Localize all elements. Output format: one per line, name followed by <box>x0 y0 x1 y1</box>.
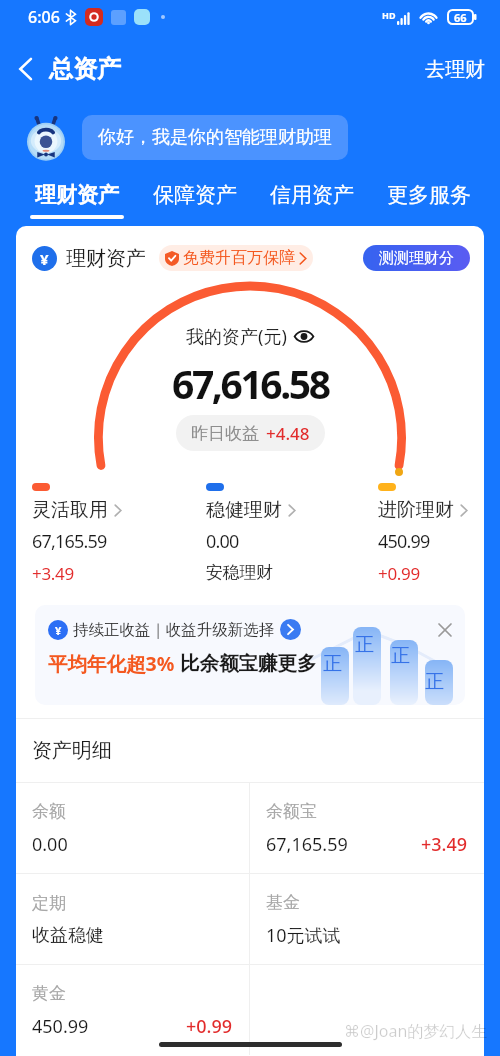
staticText: 67,165.59 <box>32 529 107 554</box>
staticText: +0.99 <box>186 1014 233 1039</box>
staticText: 正 <box>425 670 444 694</box>
button[interactable]: 昨日收益 <box>176 415 325 451</box>
staticText: 灵活取用 <box>32 498 108 522</box>
button[interactable]: Close <box>433 618 457 642</box>
staticText: 比余额宝赚更多 <box>180 651 317 676</box>
staticText: 10元试试 <box>266 923 341 948</box>
staticText: 你好，我是你的智能理财助理 <box>98 126 332 149</box>
staticText: ¥ <box>40 249 49 269</box>
button[interactable]: 更多服务 <box>370 182 487 219</box>
button[interactable]: 理财资产 <box>18 182 136 219</box>
staticText: 余额 <box>32 801 66 822</box>
staticText: 我的资产(元) <box>186 324 287 349</box>
other: Assistant <box>27 113 65 161</box>
button[interactable]: 余额 <box>16 783 249 873</box>
staticText: 理财资产 <box>66 246 146 271</box>
button[interactable]: Toggle amount visibility <box>294 329 314 344</box>
staticText: 0.00 <box>206 529 239 554</box>
staticText: ¥ <box>55 623 62 638</box>
button[interactable]: 进阶理财 <box>378 481 484 585</box>
button[interactable]: 你好，我是你的智能理财助理 <box>82 115 348 160</box>
staticText: +3.49 <box>421 832 468 857</box>
staticText: 进阶理财 <box>378 498 454 522</box>
button[interactable]: 信用资产 <box>253 182 370 219</box>
staticText: +0.99 <box>378 562 420 585</box>
staticText: 总资产 <box>49 54 121 84</box>
staticText: 更多服务 <box>387 182 471 208</box>
staticText: 稳健理财 <box>206 498 282 522</box>
staticText: 0.00 <box>32 832 68 857</box>
staticText: 450.99 <box>378 529 430 554</box>
staticText: 安稳理财 <box>206 562 273 583</box>
staticText: 昨日收益 <box>191 423 259 444</box>
staticText: 正 <box>391 644 410 668</box>
staticText: 资产明细 <box>32 738 112 763</box>
staticText: 平均年化超3% <box>48 650 175 677</box>
staticText: +3.49 <box>32 562 74 585</box>
button[interactable]: 保障资产 <box>136 182 253 219</box>
button[interactable]: 定期 <box>16 874 249 964</box>
button[interactable]: 正 <box>35 605 465 705</box>
staticText: 450.99 <box>32 1014 89 1039</box>
staticText: 66 <box>454 10 467 25</box>
button[interactable]: 灵活取用 <box>32 481 142 585</box>
staticText: 67,165.59 <box>266 832 348 857</box>
staticText: 持续正收益｜收益升级新选择 <box>73 620 275 640</box>
staticText: 保障资产 <box>153 182 237 208</box>
staticText: 正 <box>323 652 342 676</box>
staticText: ⌘@Joan的梦幻人生 <box>344 1020 488 1042</box>
staticText: 理财资产 <box>35 182 119 208</box>
button[interactable]: 基金 <box>250 874 484 964</box>
staticText: 正 <box>355 633 374 657</box>
button[interactable]: Back <box>7 51 43 87</box>
button[interactable] <box>250 965 484 1055</box>
staticText: 6:06 <box>28 6 60 28</box>
staticText: 余额宝 <box>266 801 317 822</box>
button[interactable]: 免费升百万保障 <box>159 245 313 271</box>
staticText: 基金 <box>266 892 300 913</box>
staticText: 定期 <box>32 893 66 914</box>
staticText: 测测理财分 <box>379 249 454 268</box>
button[interactable]: 测测理财分 <box>363 245 470 271</box>
staticText: 67,616.58 <box>172 357 329 410</box>
button[interactable]: 去理财 <box>410 49 500 90</box>
staticText: HD <box>382 9 396 21</box>
staticText: 免费升百万保障 <box>183 248 295 268</box>
staticText: 收益稳健 <box>32 924 104 947</box>
staticText: 黄金 <box>32 983 66 1004</box>
button[interactable]: 黄金 <box>16 965 249 1055</box>
staticText: 去理财 <box>425 57 485 82</box>
button[interactable]: 余额宝 <box>250 783 484 873</box>
staticText: 信用资产 <box>270 182 354 208</box>
staticText: +4.48 <box>266 422 310 445</box>
button[interactable]: 稳健理财 <box>206 481 316 583</box>
